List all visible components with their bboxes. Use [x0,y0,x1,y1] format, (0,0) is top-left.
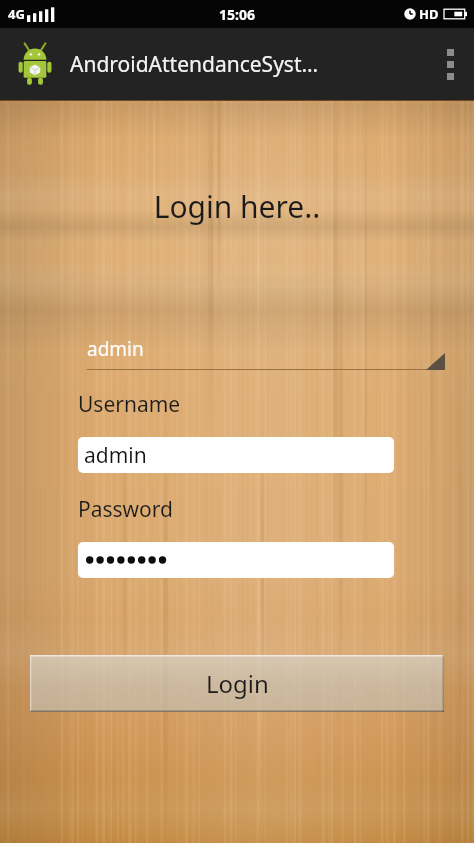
staticText: Login here.. [0,186,474,227]
staticText: admin [84,441,147,470]
button[interactable]: More options [426,28,474,100]
button[interactable]: Login [30,655,444,712]
staticText: 4G [8,5,25,23]
button[interactable]: admin [87,333,445,370]
staticText: Login [206,667,269,700]
staticText: Password [78,495,173,524]
button[interactable]: admin [78,437,394,473]
staticText: Username [78,390,181,419]
button[interactable] [78,542,394,578]
staticText: HD [419,5,439,23]
staticText: admin [87,336,144,362]
staticText: AndroidAttendanceSyst… [70,50,319,79]
staticText: 15:06 [219,5,255,24]
